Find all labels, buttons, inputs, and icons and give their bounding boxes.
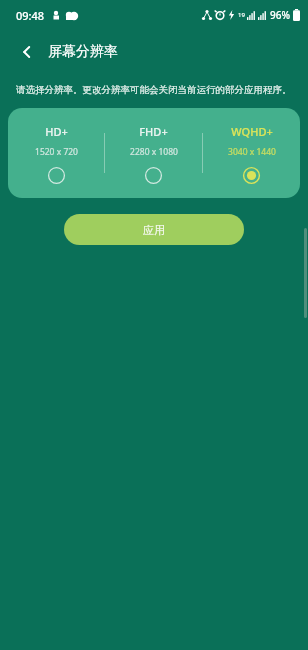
staticText: 09:48 xyxy=(16,8,45,23)
button[interactable]: FHD+ xyxy=(105,108,202,198)
staticText: WQHD+ xyxy=(231,124,273,139)
button[interactable]: 应用 xyxy=(64,214,244,245)
staticText: FHD+ xyxy=(139,124,168,139)
staticText: 请选择分辨率。更改分辨率可能会关闭当前运行的部分应用程序。 xyxy=(16,84,292,96)
staticText: 应用 xyxy=(143,223,165,237)
staticText: 19 xyxy=(238,11,245,19)
staticText: 3040 x 1440 xyxy=(228,146,276,158)
staticText: 1520 x 720 xyxy=(35,146,78,158)
staticText: 2280 x 1080 xyxy=(130,146,178,158)
button[interactable]: Back xyxy=(12,37,42,67)
staticText: 96% xyxy=(270,8,290,22)
staticText: HD+ xyxy=(45,124,68,139)
button[interactable]: HD+ xyxy=(8,108,104,198)
staticText: 屏幕分辨率 xyxy=(48,43,118,61)
button[interactable]: WQHD+ xyxy=(203,108,300,198)
